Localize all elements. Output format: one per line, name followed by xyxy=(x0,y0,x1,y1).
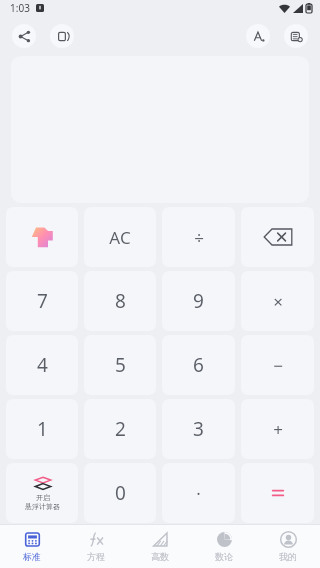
button[interactable]: Font size xyxy=(246,24,270,48)
staticText: 高数 xyxy=(151,551,169,562)
button[interactable]: 9 xyxy=(162,271,235,331)
staticText: 3 xyxy=(193,416,204,442)
button[interactable]: History xyxy=(284,24,308,48)
button[interactable]: 我的 xyxy=(256,525,320,568)
button[interactable] xyxy=(241,463,314,523)
button[interactable]: 标准 xyxy=(0,525,64,568)
button[interactable]: Backspace xyxy=(241,207,314,267)
staticText: 2 xyxy=(115,416,126,442)
button[interactable]: ÷ xyxy=(162,207,235,267)
button[interactable]: 数论 xyxy=(192,525,256,568)
staticText: − xyxy=(273,354,283,377)
button[interactable]: Scan xyxy=(50,24,74,48)
button[interactable]: 5 xyxy=(84,335,156,395)
button[interactable]: AC xyxy=(84,207,156,267)
button[interactable]: × xyxy=(241,271,314,331)
staticText: 6 xyxy=(193,352,204,378)
staticText: AC xyxy=(109,226,131,249)
staticText: 5 xyxy=(115,352,126,378)
staticText: 方程 xyxy=(87,551,105,562)
staticText: 0 xyxy=(115,480,126,506)
staticText: 数论 xyxy=(215,551,233,562)
staticText: 4 xyxy=(37,352,48,378)
staticText: 1:03 xyxy=(10,1,30,15)
staticText: 标准 xyxy=(23,551,41,562)
button[interactable]: 6 xyxy=(162,335,235,395)
button[interactable]: 开启 xyxy=(6,463,78,523)
button[interactable]: 7 xyxy=(6,271,78,331)
button[interactable]: 1 xyxy=(6,399,78,459)
staticText: 9 xyxy=(193,288,204,314)
button[interactable]: 方程 xyxy=(64,525,128,568)
staticText: 悬浮计算器 xyxy=(25,502,60,511)
button[interactable]: Share xyxy=(12,24,36,48)
staticText: 7 xyxy=(37,288,48,314)
button[interactable]: 3 xyxy=(162,399,235,459)
button[interactable]: 4 xyxy=(6,335,78,395)
button[interactable]: · xyxy=(162,463,235,523)
button[interactable]: − xyxy=(241,335,314,395)
staticText: ÷ xyxy=(194,226,204,249)
staticText: 1 xyxy=(37,416,48,442)
staticText: 8 xyxy=(115,288,126,314)
button[interactable]: 2 xyxy=(84,399,156,459)
button[interactable] xyxy=(6,207,78,267)
staticText: · xyxy=(196,482,201,505)
button[interactable]: 8 xyxy=(84,271,156,331)
staticText: 开启 xyxy=(36,493,50,502)
staticText: + xyxy=(273,418,283,441)
staticText: 我的 xyxy=(279,551,297,562)
staticText: × xyxy=(273,290,283,313)
button[interactable]: 高数 xyxy=(128,525,192,568)
button[interactable]: + xyxy=(241,399,314,459)
button[interactable]: 0 xyxy=(84,463,156,523)
